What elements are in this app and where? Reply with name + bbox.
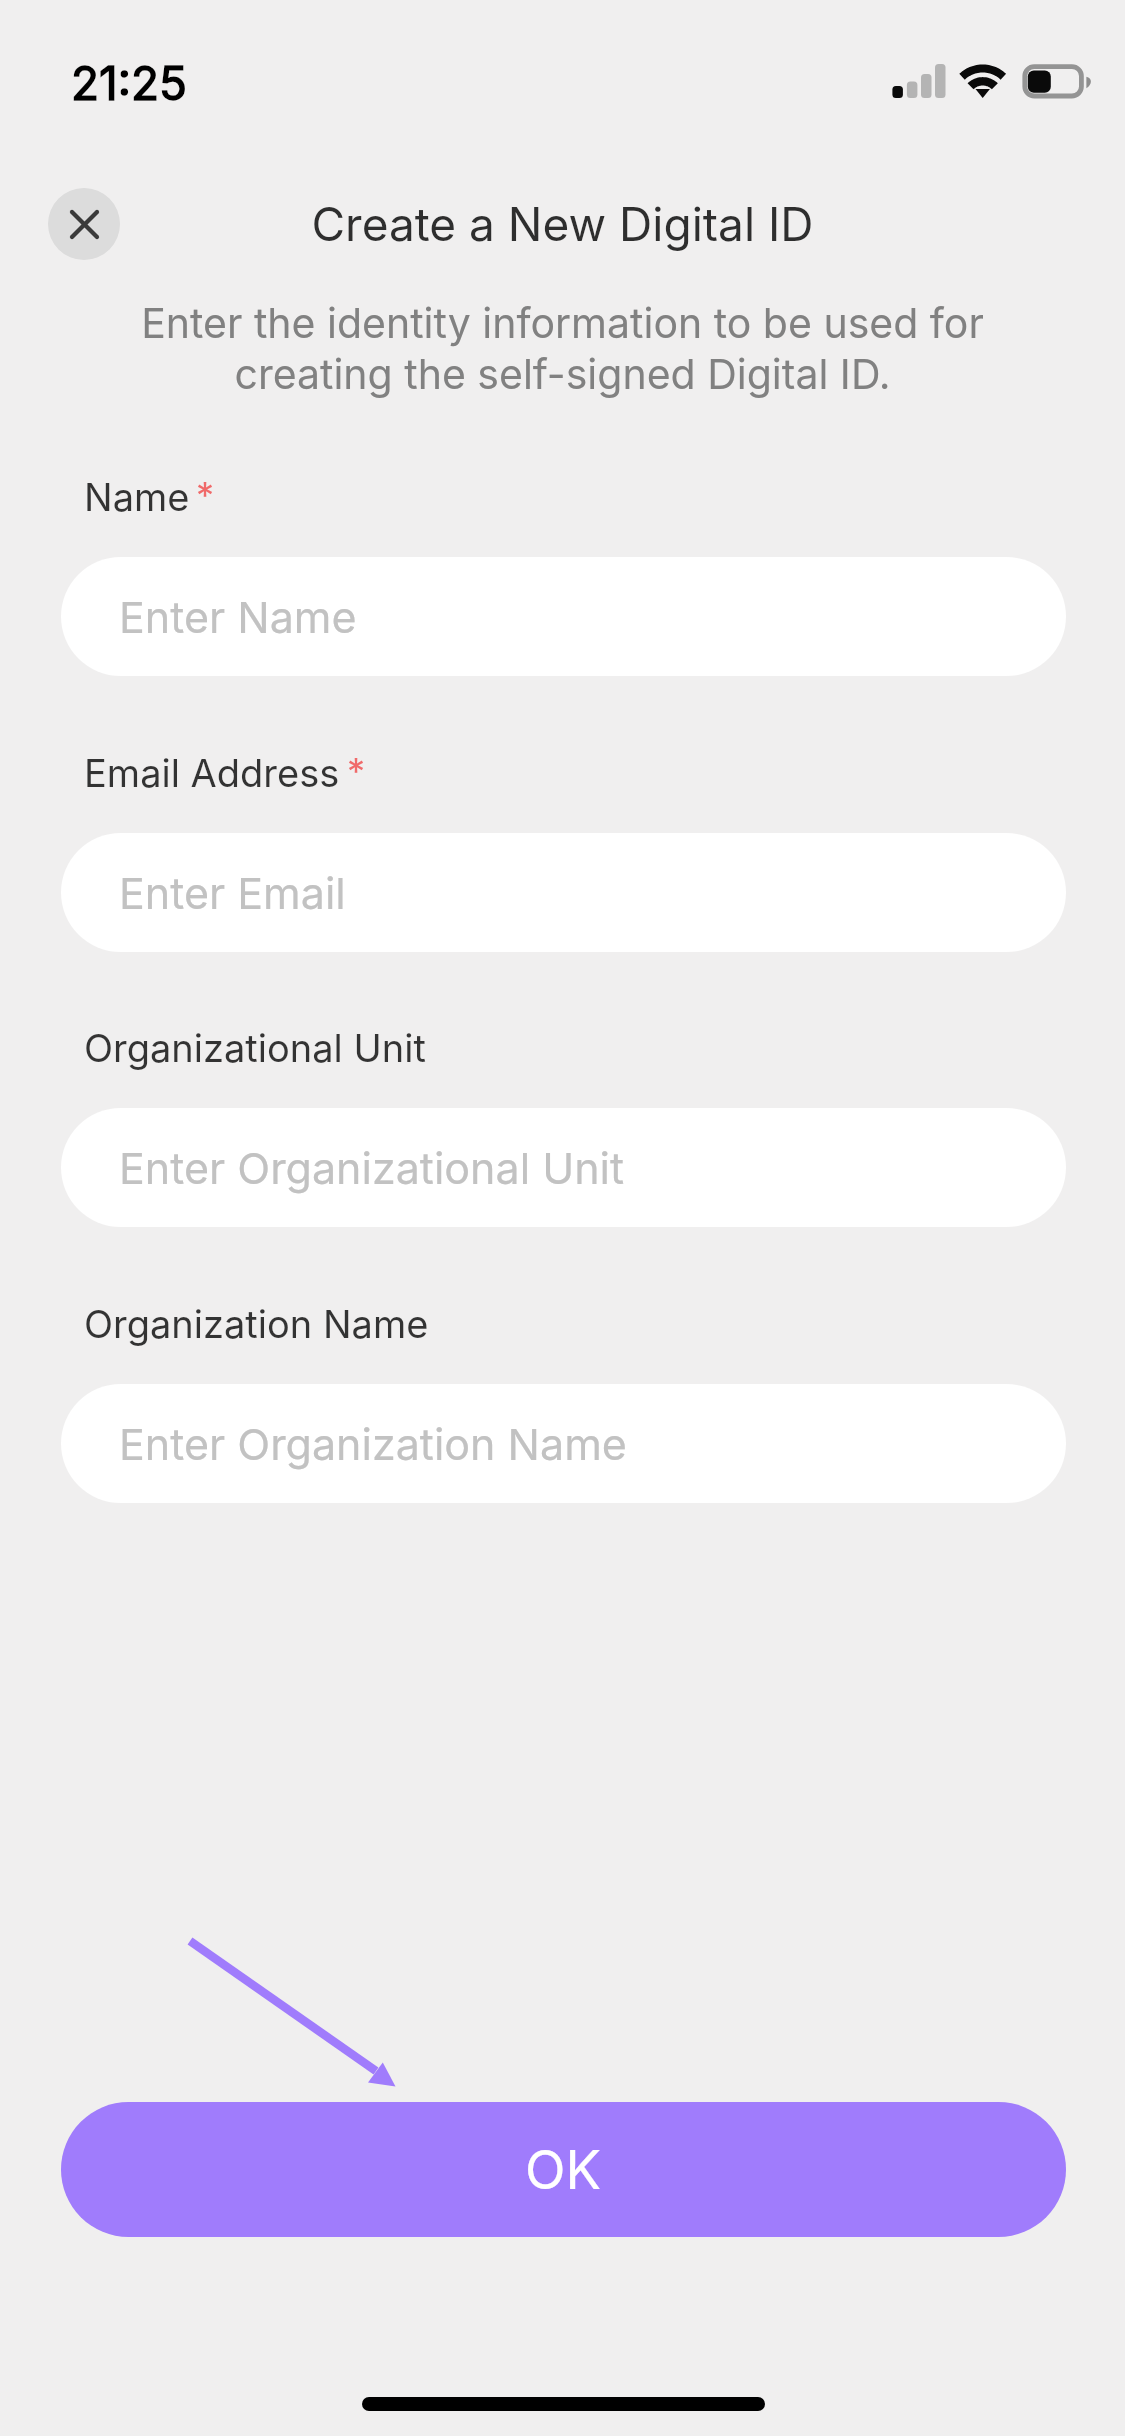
button[interactable]: Close	[48, 188, 120, 260]
staticText: Enter Organization Name	[119, 1418, 627, 1470]
staticText: Organizational Unit	[84, 1025, 426, 1071]
button[interactable]: Enter Organization Name	[61, 1384, 1066, 1503]
button[interactable]: Enter Email	[61, 833, 1066, 952]
staticText: Name	[84, 474, 190, 520]
staticText: Create a New Digital ID	[0, 196, 1125, 252]
staticText: 21:25	[71, 55, 188, 111]
button[interactable]: OK	[61, 2102, 1066, 2237]
staticText: Email Address	[84, 750, 340, 796]
staticText: OK	[525, 2138, 602, 2202]
staticText: *	[347, 749, 366, 793]
staticText: Enter Organizational Unit	[119, 1142, 625, 1194]
staticText: Enter the identity information to be use…	[100, 298, 1025, 399]
staticText: Enter Email	[119, 867, 346, 919]
button[interactable]: Enter Organizational Unit	[61, 1108, 1066, 1227]
staticText: Organization Name	[84, 1301, 429, 1347]
button[interactable]: Enter Name	[61, 557, 1066, 676]
staticText: *	[196, 473, 215, 517]
staticText: Enter Name	[119, 591, 357, 643]
